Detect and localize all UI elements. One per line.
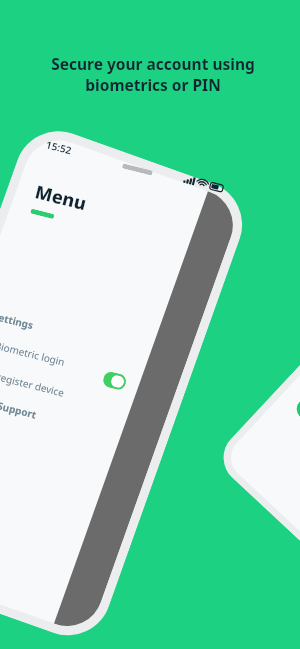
staticText: Biometric login xyxy=(0,338,67,369)
staticText: Secure your account using biometrics or … xyxy=(19,53,287,95)
staticText: Support xyxy=(0,398,38,422)
staticText: Settings xyxy=(0,309,35,332)
staticText: Menu xyxy=(32,179,89,216)
staticText: 15:52 xyxy=(45,137,73,157)
staticText: Unregister device xyxy=(0,366,66,400)
